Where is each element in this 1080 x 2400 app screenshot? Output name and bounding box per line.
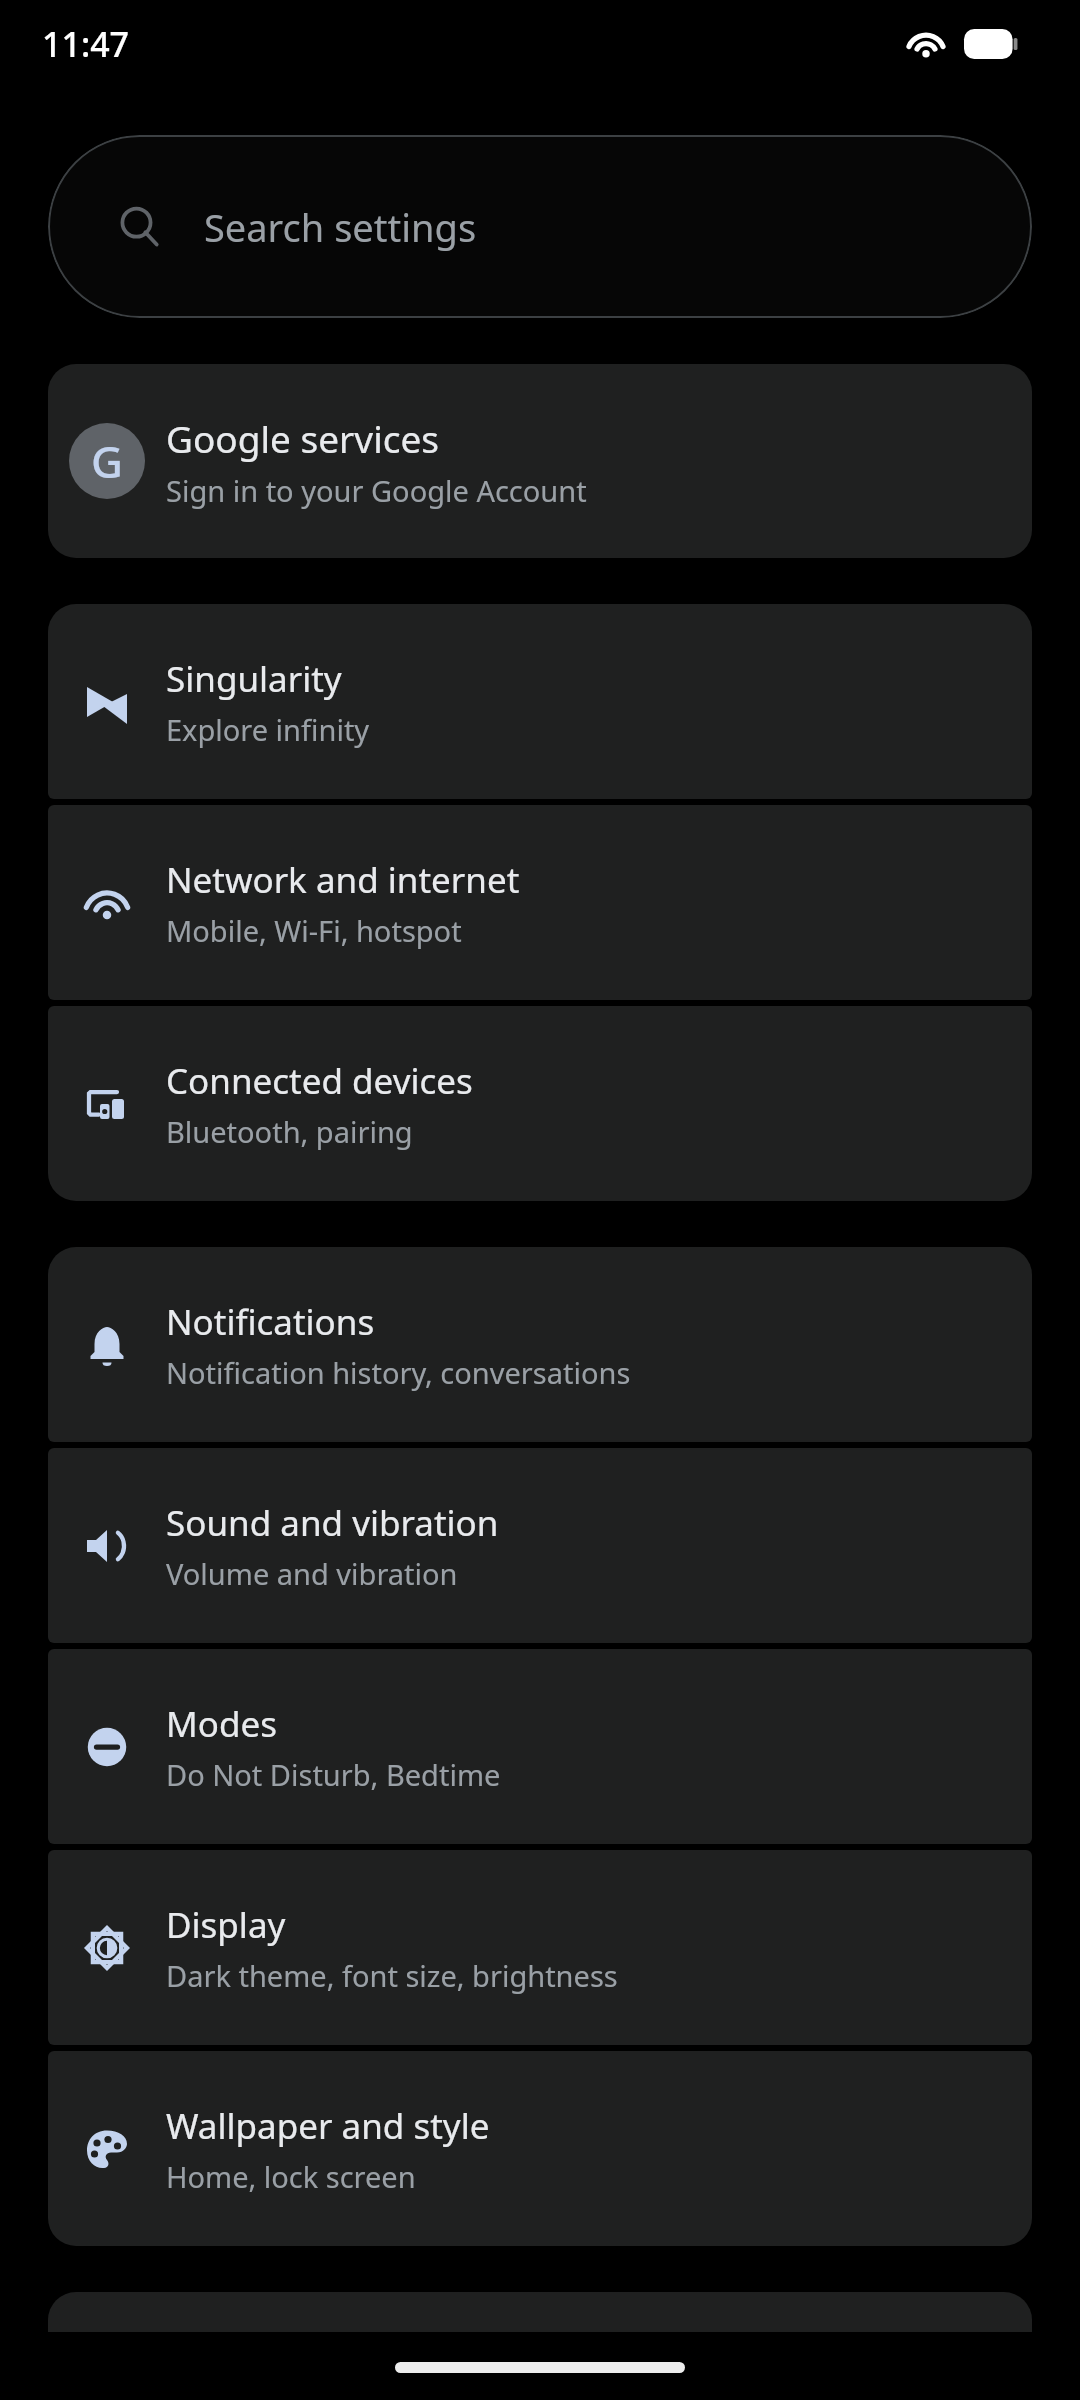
staticText: Home, lock screen	[166, 2157, 416, 2196]
staticText: Display	[166, 1901, 286, 1949]
staticText: Explore infinity	[166, 710, 370, 749]
staticText: Dark theme, font size, brightness	[166, 1956, 618, 1995]
button[interactable]: Notifications	[48, 1247, 1032, 1442]
button[interactable]: Search settings	[48, 135, 1032, 318]
staticText: Volume and vibration	[166, 1554, 458, 1593]
button[interactable]: G	[48, 364, 1032, 558]
button[interactable]: Connected devices	[48, 1006, 1032, 1201]
staticText: Wallpaper and style	[166, 2102, 490, 2150]
staticText: Modes	[166, 1700, 277, 1748]
staticText: G	[91, 431, 123, 491]
staticText: Bluetooth, pairing	[166, 1112, 413, 1151]
staticText: Singularity	[166, 655, 342, 703]
staticText: Network and internet	[166, 856, 520, 904]
button[interactable]: Wallpaper and style	[48, 2051, 1032, 2246]
button[interactable]: Display	[48, 1850, 1032, 2045]
staticText: Mobile, Wi-Fi, hotspot	[166, 911, 462, 950]
staticText: Search settings	[204, 201, 477, 253]
staticText: Connected devices	[166, 1057, 473, 1105]
button[interactable]: Singularity	[48, 604, 1032, 799]
staticText: Notification history, conversations	[166, 1353, 631, 1392]
other: Home gesture handle	[395, 2362, 685, 2373]
staticText: Google services	[166, 413, 440, 463]
button[interactable]: Sound and vibration	[48, 1448, 1032, 1643]
staticText: Notifications	[166, 1298, 375, 1346]
staticText: 11:47	[42, 21, 130, 67]
button[interactable]: Network and internet	[48, 805, 1032, 1000]
staticText: Sound and vibration	[166, 1499, 499, 1547]
button[interactable]: Modes	[48, 1649, 1032, 1844]
staticText: Sign in to your Google Account	[166, 471, 587, 510]
staticText: Do Not Disturb, Bedtime	[166, 1755, 501, 1794]
